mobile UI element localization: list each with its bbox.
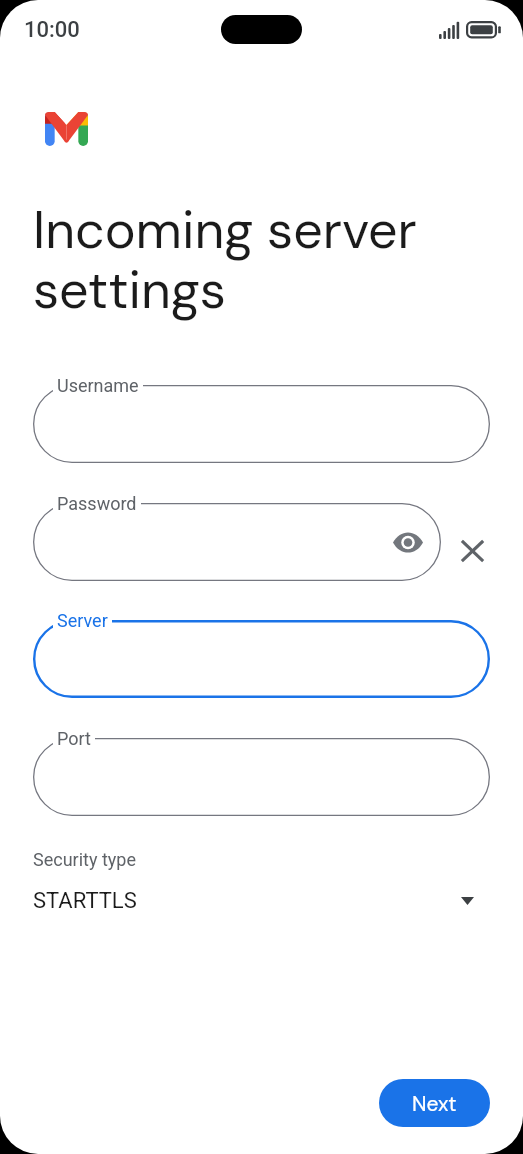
button[interactable]: STARTTLS [0,878,523,924]
button[interactable]: Server [33,620,490,698]
button[interactable]: Username [33,385,490,463]
staticText: 10:00 [24,17,80,43]
staticText: Next [412,1090,457,1117]
staticText: Password [57,493,137,514]
staticText: Server [57,610,108,631]
staticText: Username [57,375,139,396]
button[interactable]: Show password [386,520,430,564]
button[interactable]: Clear password [451,529,494,572]
staticText: Port [57,728,91,749]
button[interactable]: Port [33,738,490,816]
staticText: Incoming server settings [33,196,433,325]
staticText: STARTTLS [33,888,137,914]
button[interactable]: Next [379,1079,490,1127]
button[interactable]: Password [33,503,441,581]
staticText: Security type [33,849,136,870]
